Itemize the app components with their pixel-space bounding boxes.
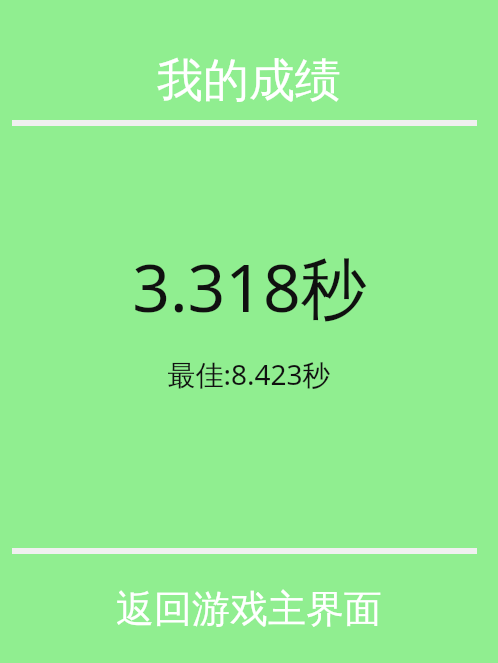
staticText: 3.318秒 [132,241,367,331]
staticText: 返回游戏主界面 [116,585,382,633]
button[interactable]: 返回游戏主界面 [0,554,498,663]
staticText: 最佳:8.423秒 [167,355,331,393]
staticText: 我的成绩 [157,52,341,110]
